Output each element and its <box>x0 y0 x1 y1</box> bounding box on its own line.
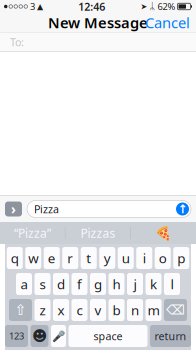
staticText: ➤ <box>140 2 147 11</box>
button[interactable]: w <box>25 247 41 269</box>
button[interactable]: y <box>99 247 115 269</box>
staticText: u <box>122 249 130 267</box>
button[interactable]: return <box>150 325 191 347</box>
button[interactable]: e <box>44 247 60 269</box>
staticText: t <box>86 249 91 267</box>
button[interactable]: c <box>71 299 87 321</box>
button[interactable]: “Pizza” <box>0 222 65 244</box>
staticText: j <box>133 275 136 293</box>
staticText: ⌫ <box>166 302 185 317</box>
staticText: 12:46 <box>78 0 105 14</box>
button[interactable]: v <box>90 299 106 321</box>
button[interactable]: ⌫ <box>164 299 187 321</box>
staticText: 3 <box>30 0 35 13</box>
button[interactable]: b <box>108 299 124 321</box>
button[interactable]: Attach <box>5 200 22 218</box>
button[interactable]: p <box>173 247 189 269</box>
button[interactable]: u <box>118 247 134 269</box>
staticText: s <box>39 275 45 293</box>
staticText: To: <box>10 35 24 49</box>
button[interactable]: r <box>62 247 78 269</box>
button[interactable]: To: <box>0 32 196 51</box>
staticText: ↑ <box>177 202 187 216</box>
button[interactable]: Pizzas <box>66 222 130 244</box>
staticText: ▲ <box>37 2 43 11</box>
staticText: › <box>11 200 16 218</box>
button[interactable]: j <box>127 273 143 295</box>
button[interactable]: 🍕 <box>131 222 196 244</box>
staticText: z <box>39 301 45 319</box>
button[interactable]: a <box>16 273 32 295</box>
staticText: Cancel <box>145 13 190 32</box>
staticText: o <box>159 249 167 267</box>
staticText: g <box>94 275 102 293</box>
staticText: ᛦ <box>149 2 155 11</box>
button[interactable]: d <box>53 273 69 295</box>
staticText: p <box>177 249 185 267</box>
staticText: w <box>28 249 38 267</box>
button[interactable]: ☻ <box>30 325 48 347</box>
staticText: r <box>67 249 73 267</box>
button[interactable]: n <box>127 299 143 321</box>
staticText: Pizzas <box>80 225 115 241</box>
staticText: “Pizza” <box>14 225 51 241</box>
staticText: m <box>147 301 159 319</box>
button[interactable]: h <box>108 273 124 295</box>
button[interactable]: g <box>90 273 106 295</box>
staticText: return <box>154 329 186 343</box>
button[interactable]: m <box>145 299 161 321</box>
button[interactable]: x <box>53 299 69 321</box>
button[interactable]: i <box>136 247 152 269</box>
button[interactable]: k <box>145 273 161 295</box>
button[interactable]: t <box>81 247 97 269</box>
button[interactable]: q <box>7 247 23 269</box>
staticText: i <box>143 249 146 267</box>
staticText: a <box>20 275 27 293</box>
staticText: f <box>77 275 82 293</box>
staticText: v <box>94 301 101 319</box>
staticText: n <box>131 301 139 319</box>
staticText: 123 <box>9 330 24 342</box>
button[interactable]: z <box>34 299 50 321</box>
button[interactable]: l <box>164 273 180 295</box>
staticText: l <box>170 275 173 293</box>
staticText: space <box>93 329 122 343</box>
staticText: x <box>57 301 64 319</box>
staticText: k <box>150 275 157 293</box>
staticText: Pizza <box>34 202 59 216</box>
button[interactable]: s <box>34 273 50 295</box>
staticText: c <box>76 301 82 319</box>
staticText: New Message <box>48 13 148 32</box>
staticText: 🍕 <box>155 225 172 241</box>
button[interactable]: Send <box>176 202 189 216</box>
staticText: b <box>112 301 120 319</box>
staticText: e <box>48 249 56 267</box>
staticText: y <box>104 249 111 267</box>
button[interactable]: o <box>155 247 171 269</box>
staticText: ⇧ <box>14 302 26 318</box>
staticText: h <box>112 275 120 293</box>
button[interactable]: 123 <box>5 325 28 347</box>
staticText: ☻ <box>32 328 47 344</box>
button[interactable]: space <box>68 325 147 347</box>
staticText: 62% <box>157 0 175 13</box>
staticText: 🎤 <box>52 330 65 342</box>
staticText: d <box>57 275 65 293</box>
staticText: q <box>11 249 19 267</box>
button[interactable]: 🎤 <box>51 325 66 347</box>
button[interactable]: f <box>71 273 87 295</box>
button[interactable]: ⇧ <box>9 299 32 321</box>
button[interactable]: Cancel <box>139 13 196 32</box>
